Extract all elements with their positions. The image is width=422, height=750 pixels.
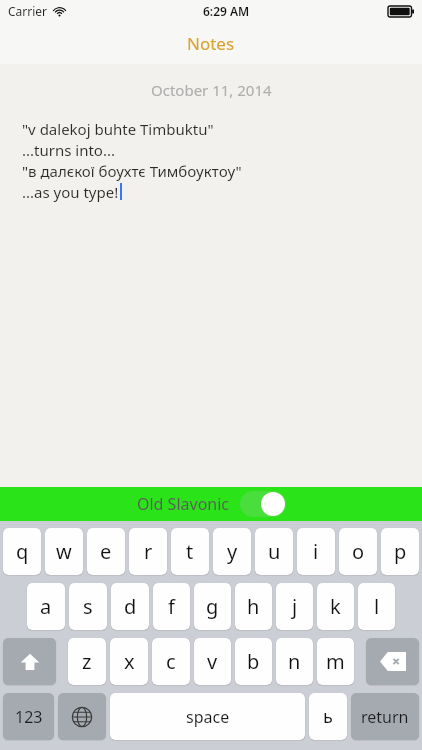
button[interactable]: 123 [3,693,54,740]
button[interactable]: k [317,583,354,630]
staticText: h [247,593,260,620]
staticText: q [16,538,29,565]
button[interactable]: s [69,583,107,630]
staticText: j [292,593,298,620]
staticText: w [56,538,72,565]
button[interactable]: d [111,583,149,630]
staticText: x [124,648,135,675]
staticText: i [313,538,319,565]
button[interactable]: q [3,528,41,575]
button[interactable]: h [235,583,272,630]
button[interactable]: Shift [3,638,56,685]
button[interactable]: n [276,638,313,685]
staticText: k [330,593,341,620]
button[interactable]: Old Slavonic [0,487,422,521]
staticText: s [83,593,93,620]
staticText: u [268,538,281,565]
button[interactable]: o [339,528,377,575]
staticText: n [288,648,301,675]
staticText: y [227,538,238,565]
button[interactable]: space [110,693,305,740]
button[interactable]: v [194,638,231,685]
staticText: e [100,538,112,565]
button[interactable]: c [152,638,190,685]
staticText: p [394,538,407,565]
staticText: t [186,538,194,565]
button[interactable]: f [153,583,190,630]
staticText: "в далєкої бѹхтє Тимбѹктѹ" [22,161,242,181]
staticText: ...as you type! [22,182,119,202]
staticText: "v dalekoj buhte Timbuktu" [22,119,214,139]
staticText: return [361,706,409,728]
button[interactable]: l [358,583,395,630]
staticText: space [186,706,230,728]
staticText: b [247,648,260,675]
staticText: l [374,593,380,620]
staticText: c [166,648,176,675]
staticText: Notes [187,32,235,55]
button[interactable]: t [171,528,209,575]
staticText: z [82,648,92,675]
button[interactable]: a [27,583,65,630]
button[interactable]: b [235,638,272,685]
staticText: ь [323,704,333,729]
button[interactable]: Delete [366,638,419,685]
button[interactable]: z [68,638,106,685]
staticText: October 11, 2014 [151,80,272,100]
staticText: v [207,648,218,675]
button[interactable]: j [276,583,313,630]
button[interactable]: ь [309,693,347,740]
button[interactable]: x [110,638,148,685]
staticText: m [326,648,345,675]
button[interactable]: p [381,528,419,575]
button[interactable]: i [297,528,335,575]
staticText: Old Slavonic [137,493,230,515]
button[interactable]: r [129,528,167,575]
button[interactable]: e [87,528,125,575]
button[interactable]: m [317,638,354,685]
staticText: ...turns into... [22,140,115,160]
button[interactable]: g [194,583,231,630]
button[interactable]: w [45,528,83,575]
button[interactable]: y [213,528,251,575]
staticText: a [40,593,52,620]
staticText: Carrier [8,3,48,19]
staticText: 123 [15,706,43,728]
staticText: 6:29 AM [203,3,250,19]
button[interactable]: u [255,528,293,575]
staticText: r [144,538,153,565]
staticText: d [124,593,137,620]
button[interactable]: Switch keyboard [58,693,106,740]
button[interactable]: return [351,693,419,740]
staticText: f [168,593,175,620]
staticText: g [206,593,219,620]
staticText: o [352,538,365,565]
